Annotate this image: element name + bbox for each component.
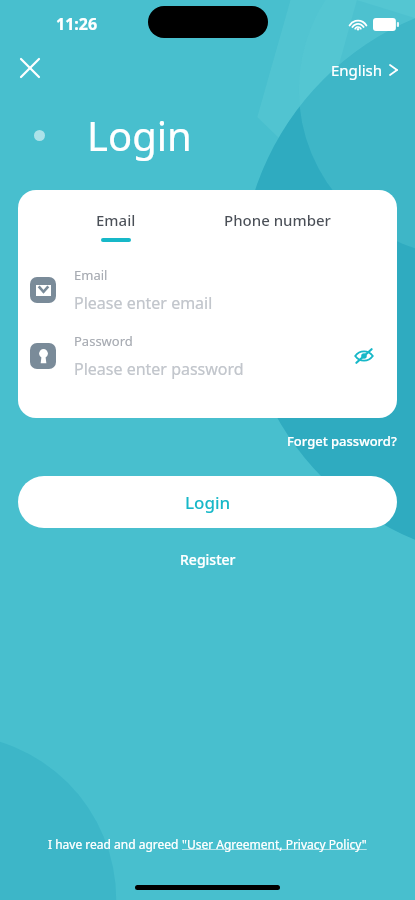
staticText: Email	[74, 266, 108, 284]
staticText: 11:26	[56, 13, 98, 35]
button[interactable]: Close	[14, 52, 46, 84]
staticText: I have read and agreed	[48, 836, 182, 852]
staticText: Forget password?	[287, 432, 397, 450]
button[interactable]: Show password	[349, 341, 379, 371]
staticText: "User Agreement, Privacy Policy"	[182, 836, 367, 852]
staticText: Email	[96, 210, 136, 230]
button[interactable]: Email	[86, 208, 146, 244]
button[interactable]: English	[327, 56, 403, 84]
button[interactable]: Forget password?	[283, 428, 401, 454]
staticText: English	[331, 60, 383, 80]
staticText: Login	[87, 108, 192, 162]
button[interactable]: Login	[18, 476, 397, 528]
button[interactable]: Phone number	[214, 208, 341, 232]
button[interactable]: "User Agreement, Privacy Policy"	[182, 836, 367, 852]
staticText: Please enter password	[74, 358, 244, 380]
staticText: Password	[74, 332, 133, 350]
staticText: Please enter email	[74, 292, 213, 314]
button[interactable]: Register	[170, 546, 246, 573]
staticText: Phone number	[224, 210, 331, 230]
staticText: Register	[180, 550, 236, 569]
staticText: Login	[185, 491, 231, 514]
